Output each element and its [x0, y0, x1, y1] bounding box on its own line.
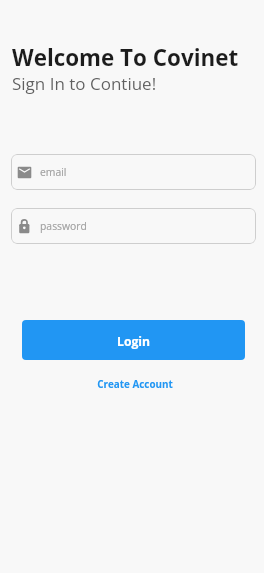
button[interactable]: Password — [11, 208, 256, 244]
other: Email — [17, 164, 32, 180]
staticText: Welcome To Covinet — [12, 42, 239, 73]
staticText: Login — [117, 333, 151, 350]
button[interactable]: Email — [11, 154, 256, 190]
staticText: Sign In to Contiue! — [12, 72, 157, 95]
button[interactable]: Login — [22, 320, 245, 360]
other: Password — [17, 218, 32, 234]
button[interactable]: Create Account — [89, 373, 181, 394]
staticText: email — [40, 165, 67, 179]
staticText: Create Account — [97, 377, 173, 390]
staticText: password — [40, 219, 87, 233]
